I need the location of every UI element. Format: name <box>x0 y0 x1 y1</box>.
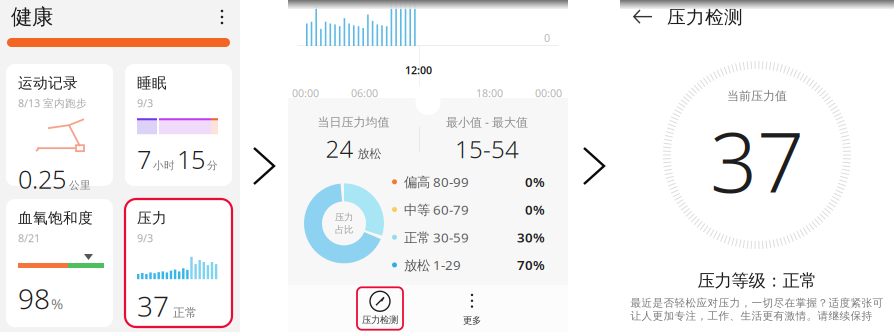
staticText: 0 <box>544 31 550 45</box>
staticText: 占比 <box>335 224 353 235</box>
staticText: 0% <box>525 173 545 191</box>
staticText: 最近是否轻松应对压力，一切尽在掌握？适度紧张可让人更加专注，工作、生活更有激情。… <box>630 296 883 322</box>
staticText: 偏高 80-99 <box>404 173 469 191</box>
staticText: 正常 30-59 <box>404 228 469 246</box>
staticText: 放松 <box>357 146 381 161</box>
staticText: 血氧饱和度 <box>18 209 93 227</box>
staticText: 00:00 <box>535 86 562 100</box>
button[interactable]: 血氧饱和度 <box>6 199 113 327</box>
staticText: 压力等级：正常 <box>697 270 816 291</box>
staticText: 0.25 <box>18 162 66 196</box>
staticText: 放松 1-29 <box>404 256 461 274</box>
staticText: 睡眠 <box>137 74 167 92</box>
button[interactable]: 压力 <box>125 199 232 327</box>
staticText: 运动记录 <box>18 74 78 92</box>
staticText: 当前压力值 <box>727 89 787 103</box>
staticText: 98 <box>18 280 50 317</box>
staticText: 30% <box>517 228 545 246</box>
staticText: 最小值 - 最大值 <box>446 114 528 130</box>
staticText: 7 <box>137 142 151 176</box>
staticText: 24 <box>325 132 353 164</box>
staticText: 18:00 <box>476 86 503 100</box>
staticText: 分 <box>207 159 218 172</box>
staticText: 健康 <box>11 4 53 30</box>
button[interactable]: 压力检测 <box>357 287 403 330</box>
staticText: 当日压力均值 <box>317 115 389 129</box>
staticText: 公里 <box>69 179 91 192</box>
staticText: 9/3 <box>137 96 153 110</box>
staticText: 15 <box>177 142 205 176</box>
staticText: 正常 <box>173 305 197 320</box>
staticText: 压力检测 <box>667 5 743 28</box>
staticText: 小时 <box>153 159 175 172</box>
staticText: 37 <box>137 287 169 324</box>
staticText: 压力 <box>335 211 353 223</box>
button[interactable]: 更多 <box>459 287 485 330</box>
staticText: 9/3 <box>137 231 153 245</box>
staticText: 压力 <box>137 209 167 227</box>
staticText: 06:00 <box>351 86 378 100</box>
staticText: 0% <box>525 201 545 218</box>
staticText: 更多 <box>463 315 481 326</box>
staticText: 中等 60-79 <box>404 201 469 218</box>
staticText: 15-54 <box>455 133 519 165</box>
staticText: 70% <box>517 256 545 274</box>
staticText: % <box>51 294 63 313</box>
button[interactable]: 睡眠 <box>125 64 232 186</box>
button[interactable]: 运动记录 <box>6 64 113 186</box>
staticText: 8/13 室内跑步 <box>18 96 87 110</box>
staticText: 压力检测 <box>362 314 398 326</box>
button[interactable]: More options <box>212 2 232 32</box>
staticText: 37 <box>710 105 804 215</box>
button[interactable]: 返回 <box>633 8 653 26</box>
staticText: 12:00 <box>405 63 432 77</box>
staticText: 00:00 <box>292 86 319 100</box>
staticText: 8/21 <box>18 231 40 245</box>
